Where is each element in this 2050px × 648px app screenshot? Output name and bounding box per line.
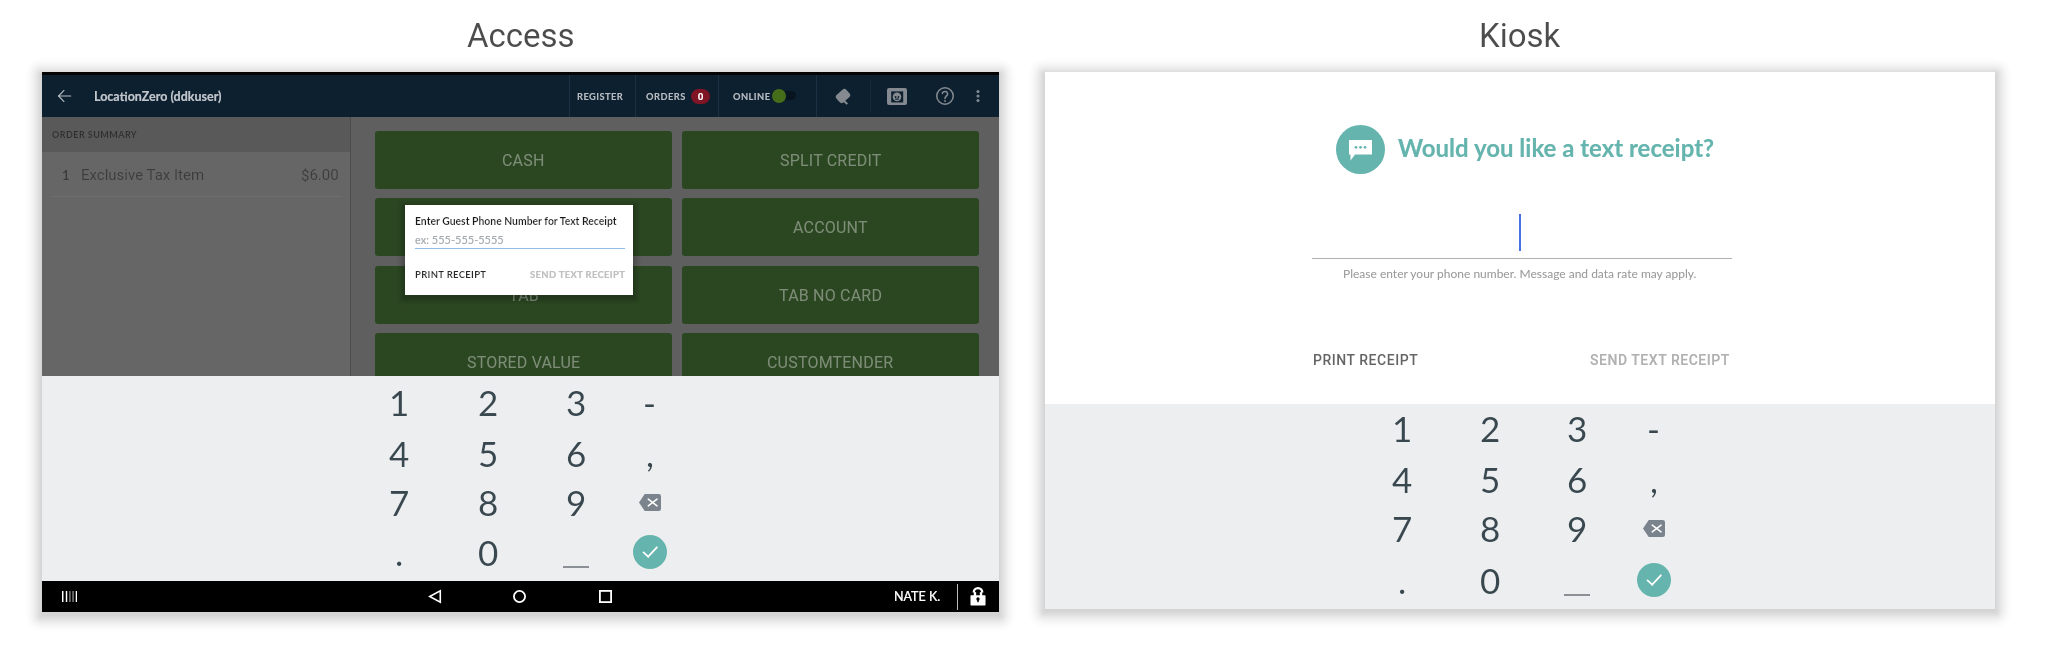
button[interactable]: PRINT RECEIPT (1297, 336, 1435, 384)
button[interactable]: Home (500, 581, 538, 612)
button[interactable]: 2 (467, 381, 509, 423)
button[interactable]: 9 (555, 481, 597, 523)
staticText: CUSTOMTENDER (767, 353, 894, 372)
staticText: Would you like a text receipt? (1398, 133, 1715, 162)
button[interactable]: SEND TEXT RECEIPT (1574, 336, 1746, 384)
button[interactable]: 9 (1556, 507, 1598, 549)
button[interactable]: SEND TEXT RECEIPT (524, 263, 632, 286)
button[interactable]: 7 (1381, 507, 1423, 549)
button[interactable]: 3 (555, 381, 597, 423)
staticText: 0 (478, 531, 499, 573)
staticText: Please enter your phone number. Message … (1343, 266, 1697, 280)
button[interactable]: Space (560, 532, 592, 572)
button[interactable]: More options (962, 75, 994, 117)
button[interactable]: 0 (467, 531, 509, 573)
button[interactable]: PRINT RECEIPT (409, 263, 493, 286)
button[interactable]: Space (1561, 560, 1593, 600)
staticText: , (646, 432, 654, 474)
button[interactable]: Lock (962, 581, 994, 612)
button[interactable]: Help (929, 75, 961, 117)
button[interactable]: TAB (375, 266, 672, 324)
button[interactable]: CREDIT (375, 198, 672, 256)
staticText: ONLINE (733, 91, 771, 102)
staticText: 8 (1480, 507, 1501, 549)
staticText: STORED VALUE (467, 353, 581, 372)
button[interactable]: CASH (375, 131, 672, 189)
staticText: 7 (389, 481, 410, 523)
staticText: CASH (502, 151, 545, 170)
button[interactable]: . (378, 531, 420, 573)
staticText: 0 (698, 91, 704, 102)
button[interactable]: Confirm (633, 535, 667, 569)
button[interactable]: 5 (1469, 458, 1511, 500)
button[interactable]: 7 (378, 481, 420, 523)
button[interactable]: 4 (1381, 458, 1423, 500)
button[interactable]: 8 (467, 481, 509, 523)
staticText: Exclusive Tax Item (81, 166, 205, 184)
staticText: Access (467, 16, 575, 55)
staticText: 1 (62, 167, 70, 183)
button[interactable]: 1 (42, 152, 350, 197)
button[interactable]: 6 (555, 432, 597, 474)
staticText: 5 (1480, 458, 1501, 500)
button[interactable]: - (629, 381, 671, 423)
staticText: TAB (509, 286, 539, 305)
staticText: ACCOUNT (793, 218, 868, 237)
staticText: 0 (1480, 559, 1501, 601)
button[interactable]: 6 (1556, 458, 1598, 500)
button[interactable]: SPLIT CREDIT (682, 131, 979, 189)
staticText: 7 (1392, 507, 1413, 549)
staticText: 1 (1392, 407, 1413, 449)
staticText: - (643, 381, 657, 423)
button[interactable]: 1 (1381, 407, 1423, 449)
button[interactable]: 5 (467, 432, 509, 474)
button[interactable]: 2 (1469, 407, 1511, 449)
button[interactable]: - (1633, 407, 1675, 449)
button[interactable]: 8 (1469, 507, 1511, 549)
button[interactable]: Backspace (636, 492, 664, 512)
staticText: 5 (478, 432, 499, 474)
button[interactable]: . (1381, 559, 1423, 601)
staticText: $6.00 (301, 166, 339, 184)
staticText: PRINT RECEIPT (1313, 352, 1419, 368)
button[interactable]: TAB NO CARD (682, 266, 979, 324)
staticText: 6 (1567, 458, 1588, 500)
staticText: 9 (1567, 507, 1588, 549)
button[interactable]: , (1633, 458, 1675, 500)
button[interactable]: Camera (881, 75, 913, 117)
staticText: PRINT RECEIPT (415, 269, 487, 280)
button[interactable]: 3 (1556, 407, 1598, 449)
button[interactable]: 0 (1469, 559, 1511, 601)
staticText: 2 (1480, 407, 1501, 449)
staticText: TAB NO CARD (779, 286, 883, 305)
button[interactable]: REGISTER (567, 75, 634, 117)
button[interactable]: 4 (378, 432, 420, 474)
button[interactable]: 1 (378, 381, 420, 423)
staticText: 9 (566, 481, 587, 523)
button[interactable]: Backspace (1640, 518, 1668, 538)
staticText: 6 (566, 432, 587, 474)
staticText: 2 (478, 381, 499, 423)
button[interactable]: ONLINE (729, 75, 799, 117)
staticText: 3 (566, 381, 587, 423)
staticText: 4 (389, 432, 410, 474)
button[interactable]: CUSTOMTENDER (682, 333, 979, 391)
staticText: NATE K. (894, 589, 941, 604)
button[interactable]: Confirm (1637, 563, 1671, 597)
button[interactable]: ACCOUNT (682, 198, 979, 256)
staticText: . (395, 531, 404, 573)
staticText: CREDIT (496, 218, 551, 237)
staticText: REGISTER (577, 91, 624, 102)
button[interactable]: Recents (586, 581, 624, 612)
staticText: 1 (389, 381, 410, 423)
button[interactable]: ORDERS (642, 75, 714, 117)
button[interactable]: , (629, 432, 671, 474)
button[interactable]: Tag (827, 75, 859, 117)
staticText: SPLIT CREDIT (780, 151, 882, 170)
staticText: - (1647, 407, 1661, 449)
button[interactable]: STORED VALUE (375, 333, 672, 391)
button[interactable]: Back (416, 581, 454, 612)
button[interactable]: Back (48, 79, 81, 112)
staticText: 4 (1392, 458, 1413, 500)
staticText: ORDERS (646, 91, 686, 102)
